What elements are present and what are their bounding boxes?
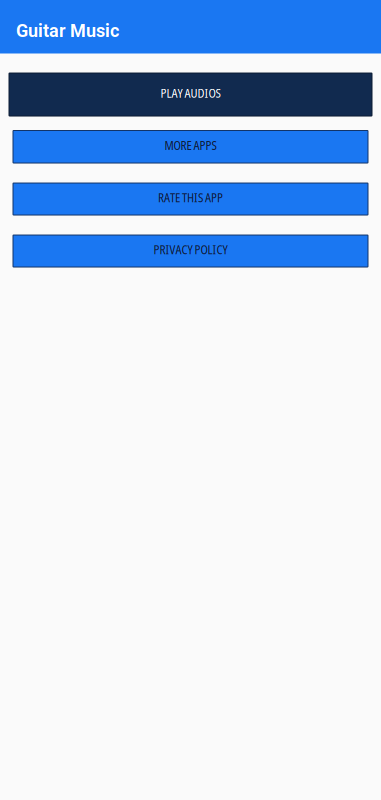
button[interactable]: MORE APPS: [13, 130, 368, 163]
staticText: Guitar Music: [16, 20, 119, 41]
staticText: RATE THIS APP: [158, 189, 223, 206]
button[interactable]: PLAY AUDIOS: [9, 73, 372, 116]
button[interactable]: PRIVACY POLICY: [13, 235, 368, 267]
staticText: PLAY AUDIOS: [160, 85, 220, 101]
staticText: MORE APPS: [164, 137, 216, 153]
staticText: PRIVACY POLICY: [153, 241, 227, 258]
button[interactable]: RATE THIS APP: [13, 183, 368, 215]
